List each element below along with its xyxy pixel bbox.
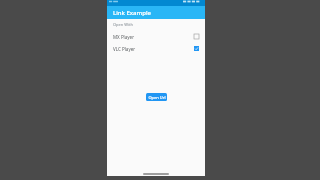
staticText: Open With [113, 22, 134, 27]
button[interactable]: VLC Player [107, 44, 205, 53]
button[interactable]: Open Url [146, 93, 167, 101]
staticText: VLC Player [113, 46, 136, 52]
staticText: Open Url [148, 95, 166, 100]
staticText: MX Player [113, 34, 134, 40]
staticText: Link Example [113, 9, 151, 17]
button[interactable]: MX Player [107, 32, 205, 41]
